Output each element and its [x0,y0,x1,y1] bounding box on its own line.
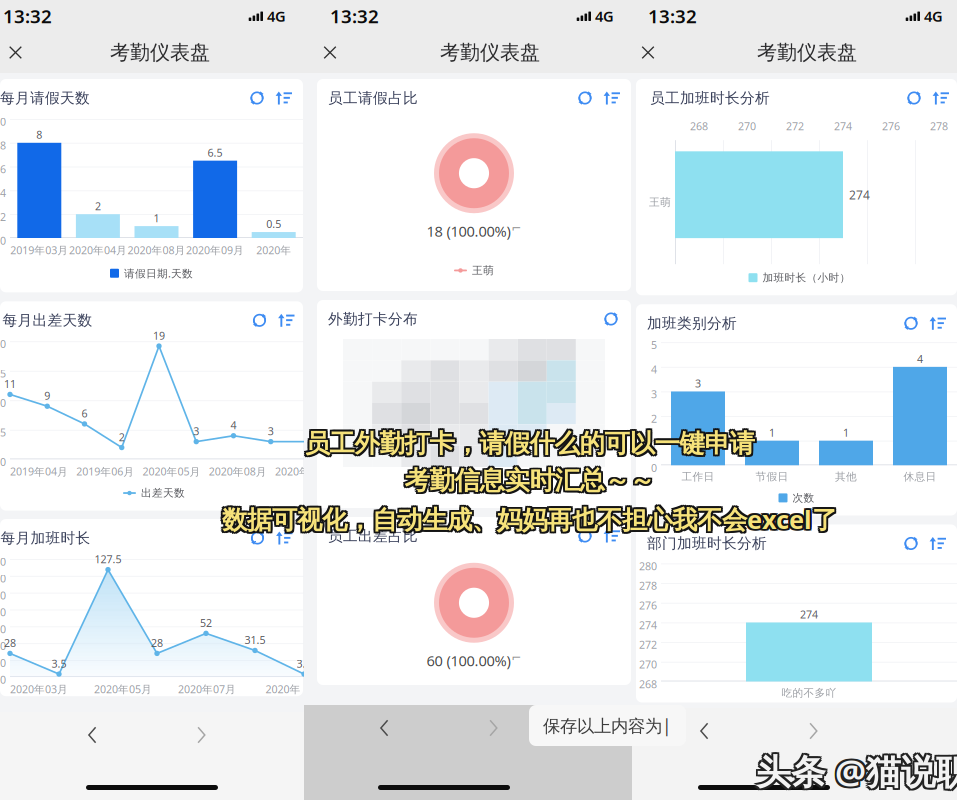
staticText: 5 [0,425,6,439]
button[interactable]: 下一页 [791,710,836,751]
staticText: 考勤信息实时汇总～～ [406,467,656,498]
staticText: 数据可视化，自动生成、妈妈再也不担心我不会excel了 [222,504,837,537]
button[interactable]: 排序 [928,86,954,110]
staticText: 4G [920,6,943,26]
button[interactable]: 下一页 [179,714,224,755]
staticText: 100 [0,588,6,602]
button[interactable]: 刷新 [243,526,271,550]
staticText: 每月出差天数 [2,311,92,329]
staticText: 2020年 [275,464,310,478]
staticText: 2020年08月 [127,243,185,257]
staticText: 3.5 [296,656,311,671]
staticText: 1 [651,436,657,450]
staticText: 员工外勤打卡，请假什么的可以一键申请 [303,426,753,457]
button[interactable]: 刷新 [571,524,599,548]
staticText: 80 [0,605,6,619]
staticText: 6 [0,162,6,176]
staticText: 考勤信息实时汇总～～ [404,467,654,498]
button[interactable]: 刷新 [597,307,625,331]
staticText: 4 [651,362,657,377]
staticText: 2020年07月 [178,682,236,696]
button[interactable]: 关闭 [632,37,663,68]
staticText: 272 [786,119,804,133]
staticText: 加班时长（小时） [762,271,850,284]
staticText: 外勤打卡分布 [328,310,418,328]
staticText: 4G [591,6,614,26]
button[interactable]: 上一页 [682,710,727,751]
button[interactable]: 刷新 [897,531,925,555]
staticText: 6 [81,406,87,420]
staticText: 1 [843,425,849,440]
staticText: 270 [738,119,756,133]
button[interactable]: 刷新 [897,311,925,335]
staticText: 头条 @猫说职场 [756,748,957,794]
staticText: 13:32 [648,4,697,28]
button[interactable]: 刷新 [900,86,928,110]
staticText: 2 [651,412,657,426]
staticText: 2019年03月 [10,243,68,257]
staticText: 52 [200,616,212,630]
staticText: 数据可视化，自动生成、妈妈再也不担心我不会excel了 [224,500,839,534]
staticText: 140 [0,554,6,569]
staticText: 18 (100.00%) [426,221,510,241]
button[interactable]: 刷新 [245,308,273,332]
staticText: 员工外勤打卡，请假什么的可以一键申请 [304,428,754,459]
staticText: 10 [0,114,6,129]
staticText: 2020年05月 [94,682,152,696]
staticText: 2 [95,199,101,213]
staticText: 0 [0,233,6,248]
button[interactable]: 关闭 [0,37,31,68]
button[interactable]: 排序 [273,308,299,332]
staticText: 0 [0,672,6,687]
staticText: 每月请假天数 [0,89,90,107]
staticText: 40 [0,639,6,653]
button[interactable]: 排序 [599,86,625,110]
staticText: 头条 @猫说职场 [756,750,957,796]
staticText: 10 [0,396,6,410]
button[interactable]: 下一页 [471,707,516,748]
button[interactable]: 关闭 [314,37,345,68]
staticText: 1 [153,211,159,225]
staticText: 120 [0,571,6,586]
staticText: 员工请假占比 [328,89,418,107]
button[interactable]: 排序 [925,531,951,555]
button[interactable]: 排序 [271,526,297,550]
button[interactable]: 排序 [599,524,625,548]
staticText: 员工外勤打卡，请假什么的可以一键申请 [303,430,753,461]
staticText: 数据可视化，自动生成、妈妈再也不担心我不会excel了 [224,504,839,537]
staticText: 部门加班时长分析 [647,534,767,552]
staticText: 员工出差占比 [328,527,418,545]
staticText: 268 [690,119,708,133]
staticText: 次数 [792,491,814,504]
staticText: 274 [800,607,818,621]
staticText: 数据可视化，自动生成、妈妈再也不担心我不会excel了 [222,502,837,536]
staticText: ⌐ [511,221,521,235]
button[interactable]: 排序 [925,311,951,335]
staticText: 4 [917,352,923,366]
staticText: 3 [268,424,274,438]
staticText: 员工外勤打卡，请假什么的可以一键申请 [304,426,754,457]
button[interactable]: 上一页 [362,707,407,748]
staticText: 考勤信息实时汇总～～ [403,463,653,494]
staticText: 2 [119,430,125,444]
staticText: 9 [44,389,50,403]
staticText: 8 [36,128,42,142]
button[interactable]: 刷新 [243,86,271,110]
staticText: 考勤信息实时汇总～～ [403,467,653,498]
staticText: 王萌 [472,264,494,277]
staticText: 272 [639,638,657,652]
staticText: 270 [639,657,657,671]
button[interactable]: 排序 [271,86,297,110]
staticText: 8 [0,138,6,152]
staticText: 考勤信息实时汇总～～ [404,465,654,496]
staticText: 20 [0,656,6,670]
button[interactable]: 上一页 [70,714,115,755]
staticText: 员工加班时长分析 [650,89,770,107]
staticText: 3 [193,424,199,438]
button[interactable]: 刷新 [571,86,599,110]
staticText: 考勤信息实时汇总～～ [403,465,653,496]
staticText: 2020年05月 [142,464,200,478]
staticText: 15 [0,366,6,380]
staticText: 13:32 [3,4,52,28]
staticText: 王萌 [649,196,671,209]
